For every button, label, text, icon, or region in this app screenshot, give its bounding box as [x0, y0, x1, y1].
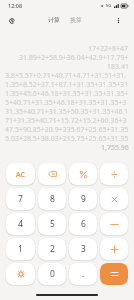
button[interactable]: More options	[113, 15, 123, 25]
staticText: 5G	[106, 3, 112, 8]
staticText: 7	[18, 193, 23, 205]
button[interactable]: 7	[6, 188, 35, 210]
button[interactable]: 2	[38, 238, 66, 260]
staticText: 0	[50, 268, 55, 280]
staticText: 计算	[48, 16, 60, 24]
staticText: AC	[16, 169, 26, 179]
staticText: 183.41	[107, 62, 129, 71]
staticText: 6	[81, 218, 86, 230]
button[interactable]: Add	[100, 238, 128, 260]
staticText: 9	[81, 193, 86, 205]
button[interactable]: .	[69, 263, 97, 285]
button[interactable]: 6	[69, 213, 97, 235]
staticText: 12:08	[8, 2, 23, 9]
button[interactable]: Subtract	[100, 213, 128, 235]
button[interactable]: Multiply	[100, 188, 128, 210]
staticText: 5	[50, 218, 55, 230]
button[interactable]: 4	[6, 213, 35, 235]
button[interactable]	[100, 263, 128, 285]
staticText: 2	[50, 243, 55, 255]
button[interactable]: 换算	[65, 14, 87, 26]
staticText: 4	[18, 218, 23, 230]
staticText: 8	[50, 193, 55, 205]
button[interactable]: 5	[38, 213, 66, 235]
staticText: 1	[18, 243, 23, 255]
button[interactable]: 1	[6, 238, 35, 260]
staticText: 31.35+40.71+31.35+50.35+31.35+46.1	[5, 107, 129, 116]
button[interactable]: 8	[38, 188, 66, 210]
button[interactable]: 0	[38, 263, 66, 285]
staticText: 5.03+28.5+38.03+215.75+25.65+31.35	[5, 134, 129, 143]
staticText: 47.5+90.85+20.9+235.67+25.65+31.35	[5, 125, 129, 134]
button[interactable]: AC	[6, 163, 35, 185]
staticText: 换算	[70, 16, 82, 24]
button[interactable]: History	[6, 15, 17, 26]
staticText: 31.89+2+58.9+36.04+42.9+17.79+	[19, 53, 129, 62]
button[interactable]: Percent	[69, 163, 97, 185]
staticText: 17+22+8+47	[88, 44, 129, 53]
button[interactable]: Scientific keypad	[6, 263, 35, 285]
button[interactable]: 9	[69, 188, 97, 210]
staticText: 3.8+5.57+0.71+40.71+4.71+31.51+31.3	[5, 71, 129, 80]
button[interactable]: Divide	[100, 163, 128, 185]
staticText: 1.35+8.52+37.1+87.1+31.35+31.35+31	[5, 80, 129, 89]
button[interactable]: Backspace	[38, 163, 66, 185]
staticText: 3	[81, 243, 86, 255]
staticText: 5+40.71+31.35+46.18+31.35+31.35+31	[5, 98, 129, 107]
staticText: 71+31.35+40.71+15.72+15.2+60.36+31	[5, 116, 129, 125]
staticText: 1,755.96	[101, 143, 129, 153]
staticText: .	[82, 268, 85, 280]
button[interactable]: 计算	[43, 14, 65, 26]
button[interactable]: 3	[69, 238, 97, 260]
staticText: 1.35+45.6+46.18+31.35+31.35+31.35+	[5, 89, 129, 98]
